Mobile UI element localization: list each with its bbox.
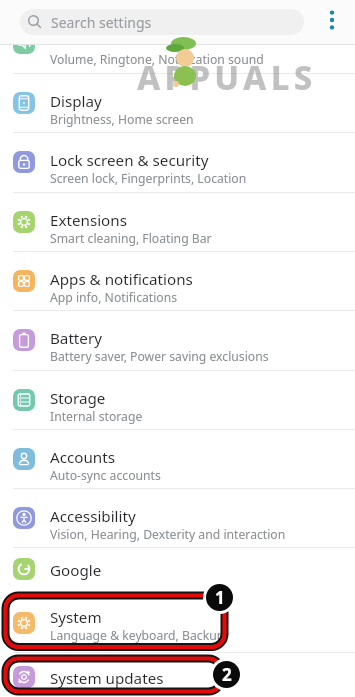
staticText: Smart cleaning, Floating Bar: [50, 230, 212, 247]
staticText: Search settings: [51, 13, 152, 32]
staticText: Google: [50, 560, 102, 581]
staticText: Accessibility: [50, 506, 136, 527]
staticText: APPUALS: [137, 55, 317, 100]
staticText: System updates: [50, 668, 164, 689]
button[interactable]: [20, 9, 304, 35]
staticText: Volume, Ringtone, Notification sound: [50, 51, 264, 68]
staticText: Battery saver, Power saving exclusions: [50, 348, 269, 365]
button[interactable]: System updates: [0, 652, 355, 697]
button[interactable]: Display: [0, 73, 355, 132]
staticText: 1: [215, 586, 225, 609]
staticText: Vision, Hearing, Dexterity and interacti…: [50, 526, 286, 543]
staticText: Storage: [50, 388, 106, 409]
button[interactable]: Lock screen & security: [0, 132, 355, 191]
staticText: Apps & notifications: [50, 269, 193, 290]
button[interactable]: [326, 9, 338, 33]
staticText: 2: [222, 663, 232, 686]
button[interactable]: Apps & notifications: [0, 251, 355, 310]
staticText: Internal storage: [50, 408, 143, 425]
staticText: Accounts: [50, 447, 116, 468]
button[interactable]: Storage: [0, 370, 355, 429]
staticText: Display: [50, 91, 102, 112]
staticText: Lock screen & security: [50, 150, 209, 171]
button[interactable]: Accessibility: [0, 488, 355, 547]
staticText: System: [50, 607, 102, 628]
button[interactable]: Accounts: [0, 429, 355, 488]
staticText: Extensions: [50, 210, 127, 231]
button[interactable]: System: [0, 592, 355, 652]
staticText: Battery: [50, 328, 102, 349]
button[interactable]: Battery: [0, 310, 355, 369]
staticText: Auto-sync accounts: [50, 467, 161, 484]
staticText: App info, Notifications: [50, 289, 178, 306]
staticText: Brightness, Home screen: [50, 111, 194, 128]
staticText: Screen lock, Fingerprints, Location: [50, 170, 247, 187]
button[interactable]: Extensions: [0, 192, 355, 251]
button[interactable]: Google: [0, 546, 355, 592]
staticText: Language & keyboard, Backup: [50, 627, 225, 644]
